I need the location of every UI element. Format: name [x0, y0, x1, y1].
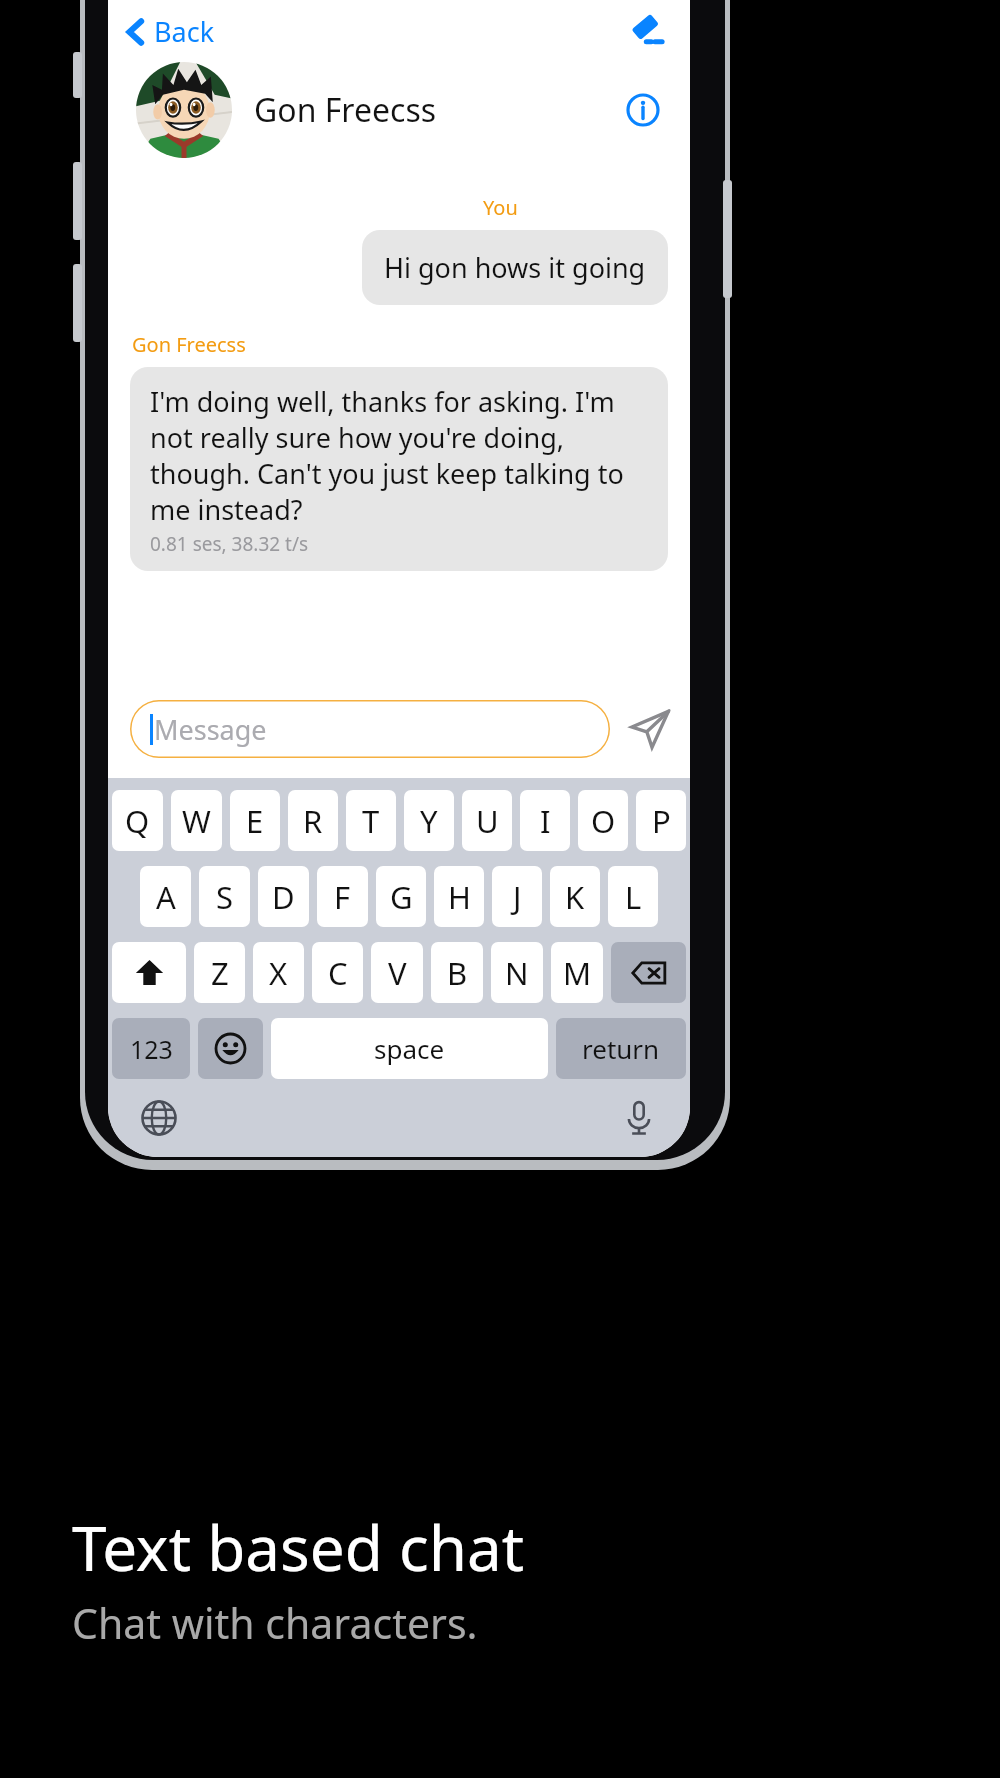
staticText: W: [182, 800, 211, 842]
button[interactable]: T: [346, 790, 396, 851]
staticText: Back: [154, 13, 215, 50]
staticText: Z: [211, 952, 229, 994]
button[interactable]: O: [578, 790, 628, 851]
staticText: Hi gon hows it going: [384, 249, 646, 286]
button[interactable]: L: [608, 866, 658, 927]
button[interactable]: return: [556, 1018, 686, 1079]
button[interactable]: J: [492, 866, 542, 927]
staticText: B: [447, 952, 468, 994]
staticText: Gon Freecss: [132, 331, 246, 358]
staticText: K: [565, 876, 585, 918]
button[interactable]: Shift: [112, 942, 186, 1003]
button[interactable]: B: [431, 942, 483, 1003]
staticText: S: [216, 876, 234, 918]
staticText: F: [334, 876, 351, 918]
staticText: Text based chat: [72, 1505, 525, 1589]
staticText: return: [582, 1031, 660, 1066]
staticText: U: [476, 800, 499, 842]
staticText: space: [374, 1031, 445, 1066]
button[interactable]: X: [253, 942, 304, 1003]
staticText: P: [652, 800, 671, 842]
button[interactable]: M: [551, 942, 603, 1003]
staticText: H: [448, 876, 471, 918]
staticText: I: [540, 800, 551, 842]
staticText: A: [156, 876, 176, 918]
button[interactable]: space: [271, 1018, 548, 1079]
staticText: Y: [420, 800, 438, 842]
button[interactable]: C: [312, 942, 363, 1003]
button[interactable]: Clear chat: [622, 6, 672, 56]
button[interactable]: Q: [112, 790, 163, 851]
button[interactable]: Hi gon hows it going: [362, 230, 668, 305]
staticText: 0.81 ses, 38.32 t/s: [150, 531, 309, 557]
staticText: T: [362, 800, 380, 842]
button[interactable]: Backspace: [611, 942, 686, 1003]
button[interactable]: Send: [622, 701, 678, 757]
staticText: N: [505, 952, 529, 994]
button[interactable]: Message: [130, 700, 610, 758]
staticText: E: [246, 800, 264, 842]
button[interactable]: P: [636, 790, 686, 851]
button[interactable]: Dictation: [612, 1091, 666, 1145]
staticText: V: [388, 952, 407, 994]
button[interactable]: U: [462, 790, 512, 851]
button[interactable]: Emoji: [198, 1018, 263, 1079]
staticText: Gon Freecss: [254, 88, 437, 132]
staticText: M: [563, 952, 592, 994]
staticText: C: [328, 952, 348, 994]
button[interactable]: E: [230, 790, 280, 851]
staticText: G: [390, 876, 413, 918]
staticText: J: [513, 876, 522, 918]
staticText: D: [272, 876, 295, 918]
button[interactable]: 123: [112, 1018, 190, 1079]
button[interactable]: H: [434, 866, 484, 927]
button[interactable]: D: [258, 866, 309, 927]
button[interactable]: Y: [404, 790, 454, 851]
button[interactable]: S: [199, 866, 250, 927]
button[interactable]: F: [317, 866, 368, 927]
button[interactable]: G: [376, 866, 426, 927]
button[interactable]: I: [520, 790, 570, 851]
button[interactable]: K: [550, 866, 600, 927]
staticText: I'm doing well, thanks for asking. I'm n…: [150, 383, 654, 528]
staticText: Message: [154, 711, 267, 748]
staticText: L: [625, 876, 642, 918]
button[interactable]: W: [171, 790, 222, 851]
staticText: R: [303, 800, 323, 842]
button[interactable]: I'm doing well, thanks for asking. I'm n…: [130, 367, 668, 571]
button[interactable]: V: [371, 942, 423, 1003]
button[interactable]: Contact avatar: [136, 62, 232, 158]
staticText: X: [269, 952, 288, 994]
staticText: 123: [130, 1032, 173, 1066]
button[interactable]: Change keyboard language: [132, 1091, 186, 1145]
staticText: You: [483, 194, 518, 221]
button[interactable]: Z: [194, 942, 245, 1003]
staticText: Q: [125, 800, 150, 842]
staticText: O: [591, 800, 616, 842]
button[interactable]: Info: [618, 85, 668, 135]
button[interactable]: R: [288, 790, 338, 851]
staticText: Chat with characters.: [72, 1595, 478, 1651]
button[interactable]: A: [140, 866, 191, 927]
button[interactable]: N: [491, 942, 543, 1003]
button[interactable]: Back: [118, 7, 223, 56]
